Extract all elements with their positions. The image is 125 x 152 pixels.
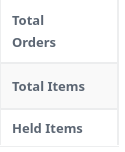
staticText: Held Items bbox=[12, 119, 83, 137]
button[interactable]: Total Items bbox=[0, 64, 125, 108]
button[interactable]: Total Orders bbox=[0, 0, 125, 62]
staticText: Total Items bbox=[12, 77, 86, 95]
button[interactable]: Held Items bbox=[0, 110, 125, 146]
staticText: Total Orders bbox=[12, 11, 57, 51]
